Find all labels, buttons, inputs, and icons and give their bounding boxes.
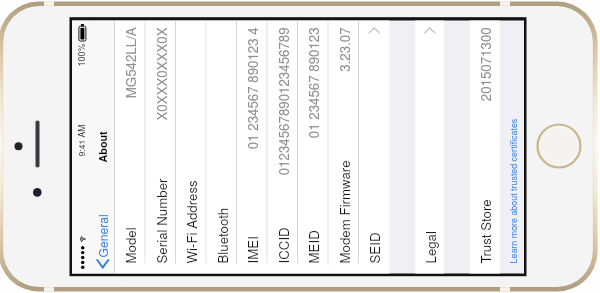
staticText: 01 234567 890123 4 bbox=[243, 27, 262, 149]
button[interactable]: Serial Number bbox=[145, 20, 176, 273]
staticText: 01234567890123456789 bbox=[273, 27, 292, 175]
staticText: Bluetooth bbox=[212, 208, 231, 264]
staticText: SEID bbox=[365, 232, 384, 264]
staticText: Serial Number bbox=[151, 178, 170, 263]
button[interactable]: ICCID bbox=[267, 20, 298, 273]
staticText: General bbox=[94, 214, 111, 257]
button[interactable]: Modem Firmware bbox=[328, 20, 359, 273]
staticText: Trust Store bbox=[475, 199, 494, 264]
staticText: Model bbox=[121, 227, 140, 264]
staticText: MG542LL/A bbox=[121, 27, 140, 98]
staticText: 2015071300 bbox=[475, 27, 494, 101]
staticText: ICCID bbox=[273, 227, 292, 264]
button[interactable]: General bbox=[90, 20, 115, 273]
staticText: 3.23.07 bbox=[334, 27, 353, 72]
button[interactable]: Bluetooth bbox=[206, 20, 237, 273]
staticText: MEID bbox=[304, 230, 323, 264]
staticText: 01 234567 890123 bbox=[304, 27, 323, 138]
button[interactable]: IMEI bbox=[237, 20, 267, 273]
staticText: X0XXX0XXX0X bbox=[151, 27, 170, 121]
staticText: 100% bbox=[74, 43, 87, 67]
staticText: Legal bbox=[420, 231, 439, 263]
staticText: Wi-Fi Address bbox=[182, 180, 201, 264]
staticText: 9:41 AM bbox=[75, 124, 87, 157]
button[interactable]: Trust Store bbox=[470, 20, 500, 273]
button[interactable]: MEID bbox=[298, 20, 328, 273]
button[interactable]: Model bbox=[115, 20, 145, 273]
staticText: IMEI bbox=[243, 236, 262, 263]
button[interactable]: SEID bbox=[359, 20, 389, 273]
staticText: Learn more about trusted certificates bbox=[506, 118, 519, 263]
staticText: Modem Firmware bbox=[334, 160, 353, 264]
button[interactable]: Wi-Fi Address bbox=[176, 20, 206, 273]
button[interactable]: Legal bbox=[415, 20, 444, 273]
staticText: About bbox=[95, 131, 110, 163]
